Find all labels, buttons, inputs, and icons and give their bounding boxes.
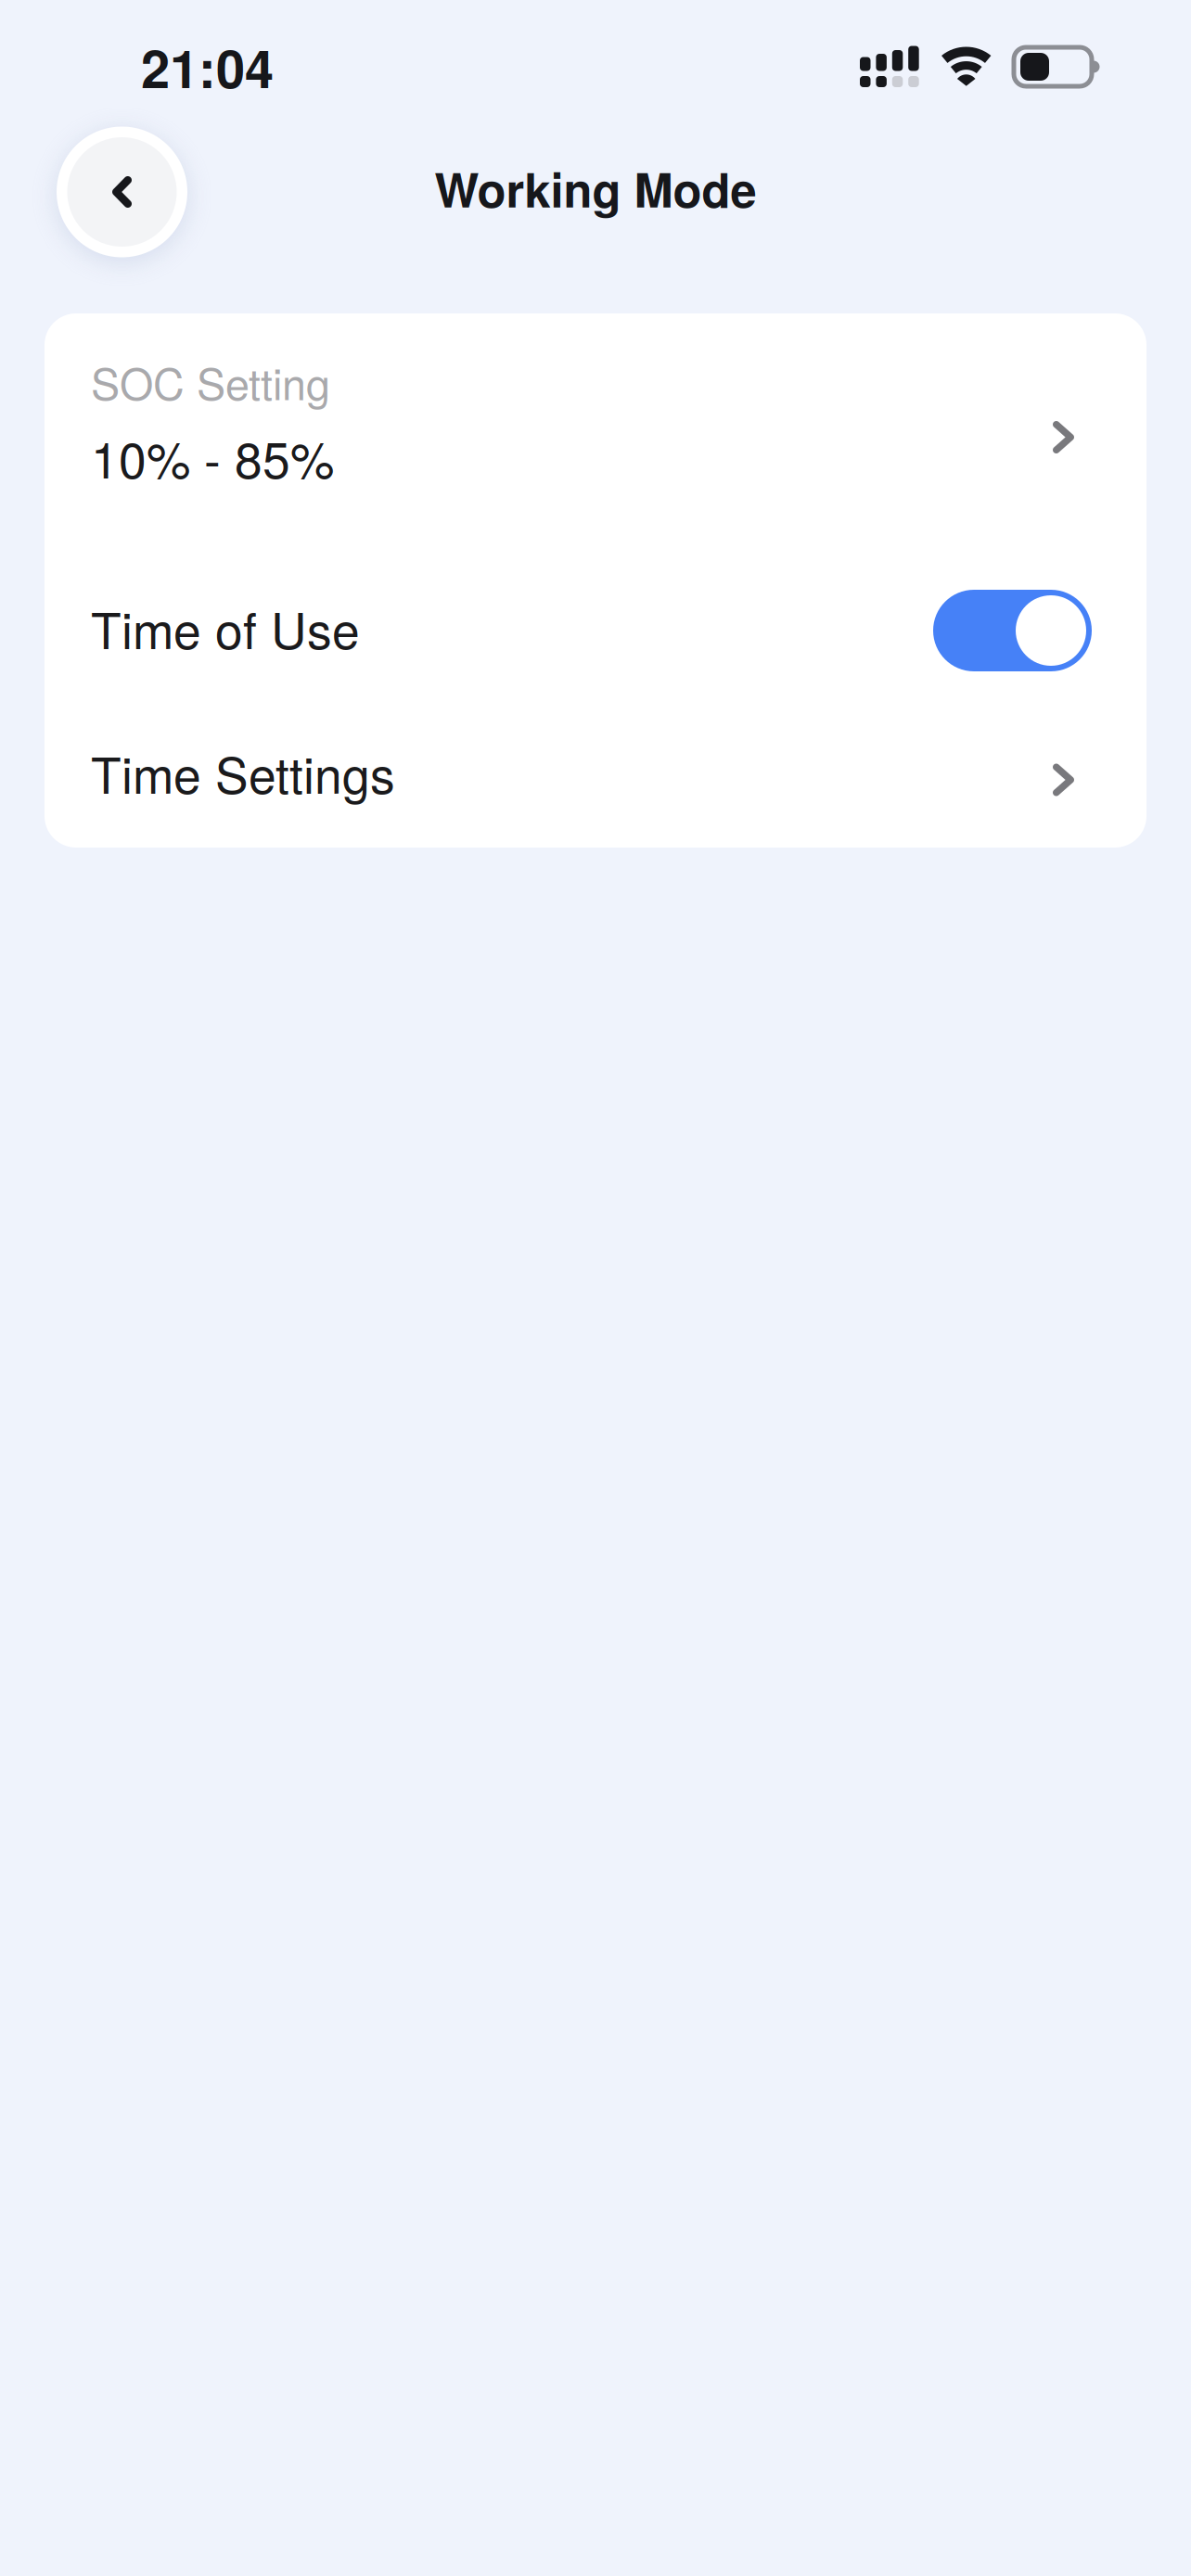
staticText: SOC Setting xyxy=(91,351,330,412)
staticText: Working Mode xyxy=(435,155,756,222)
button[interactable]: SOC Setting xyxy=(45,313,1146,558)
staticText: Time of Use xyxy=(91,592,360,663)
button[interactable]: Time Settings xyxy=(45,697,1146,848)
button[interactable]: Time of Use xyxy=(45,558,1146,697)
staticText: 21:04 xyxy=(141,30,274,104)
staticText: 10% - 85% xyxy=(91,422,334,493)
button[interactable]: Back xyxy=(57,127,187,257)
staticText: Time Settings xyxy=(91,737,395,808)
